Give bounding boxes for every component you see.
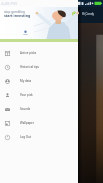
button[interactable]: Historical tips (0, 60, 78, 74)
staticText: Your pick (20, 93, 33, 97)
staticText: Log Out (20, 135, 32, 139)
staticText: 4:48 PM (1, 1, 17, 7)
staticText: Sounds (20, 107, 31, 111)
button[interactable]: Active picks (0, 46, 78, 60)
button[interactable]: Your pick (0, 88, 78, 102)
button[interactable]: Wallpaper (0, 116, 78, 130)
staticText: Active picks (20, 51, 37, 55)
staticText: Wallpaper (20, 121, 34, 125)
staticText: My data (20, 79, 32, 83)
button[interactable]: Log Out (0, 130, 78, 144)
staticText: start investing (4, 13, 31, 18)
button[interactable]: My data (0, 74, 78, 88)
staticText: stop gambling (4, 10, 26, 14)
button[interactable]: Sounds (0, 102, 78, 116)
staticText: Hi,Candy (82, 12, 95, 16)
staticText: Historical tips (20, 65, 39, 69)
